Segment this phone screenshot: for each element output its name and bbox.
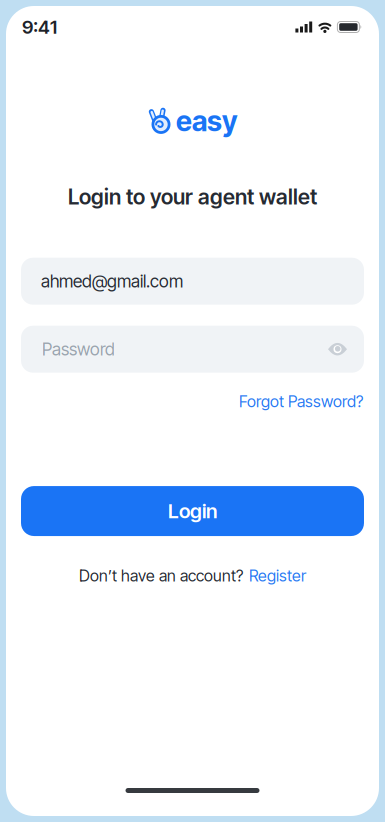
staticText: Login to your agent wallet xyxy=(68,184,317,210)
button[interactable]: Forgot Password? xyxy=(239,392,363,411)
staticText: Don’t have an account? xyxy=(79,566,243,585)
staticText: 9:41 xyxy=(22,16,57,38)
button[interactable]: Show password xyxy=(328,343,347,356)
button[interactable]: Password xyxy=(21,326,364,373)
staticText: Login xyxy=(168,499,217,523)
button[interactable]: Email xyxy=(21,258,364,305)
staticText: ahmed@gmail.com xyxy=(41,271,183,292)
staticText: Register xyxy=(249,566,306,585)
staticText: Forgot Password? xyxy=(239,392,363,411)
staticText: easy xyxy=(176,104,237,138)
button[interactable]: Register xyxy=(249,566,306,585)
staticText: Password xyxy=(42,339,115,360)
button[interactable]: Login xyxy=(21,486,364,536)
